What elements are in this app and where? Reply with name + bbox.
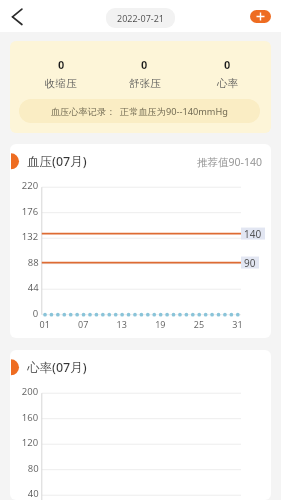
staticText: 推荐值90-140 bbox=[197, 155, 262, 169]
staticText: 血压心率记录： 正常血压为90--140mmHg bbox=[51, 105, 228, 118]
staticText: 心率(07月) bbox=[27, 359, 87, 376]
button[interactable]: Add record bbox=[250, 10, 271, 23]
staticText: 心率 bbox=[217, 77, 238, 90]
staticText: 收缩压 bbox=[45, 77, 77, 90]
staticText: 0 bbox=[141, 57, 148, 72]
button[interactable]: 2022-07-21 bbox=[106, 8, 175, 28]
staticText: 2022-07-21 bbox=[117, 12, 164, 24]
button[interactable]: Back bbox=[0, 0, 33, 32]
staticText: 0 bbox=[224, 57, 231, 72]
staticText: 0 bbox=[58, 57, 65, 72]
staticText: 血压(07月) bbox=[27, 153, 87, 170]
staticText: 舒张压 bbox=[129, 77, 161, 90]
